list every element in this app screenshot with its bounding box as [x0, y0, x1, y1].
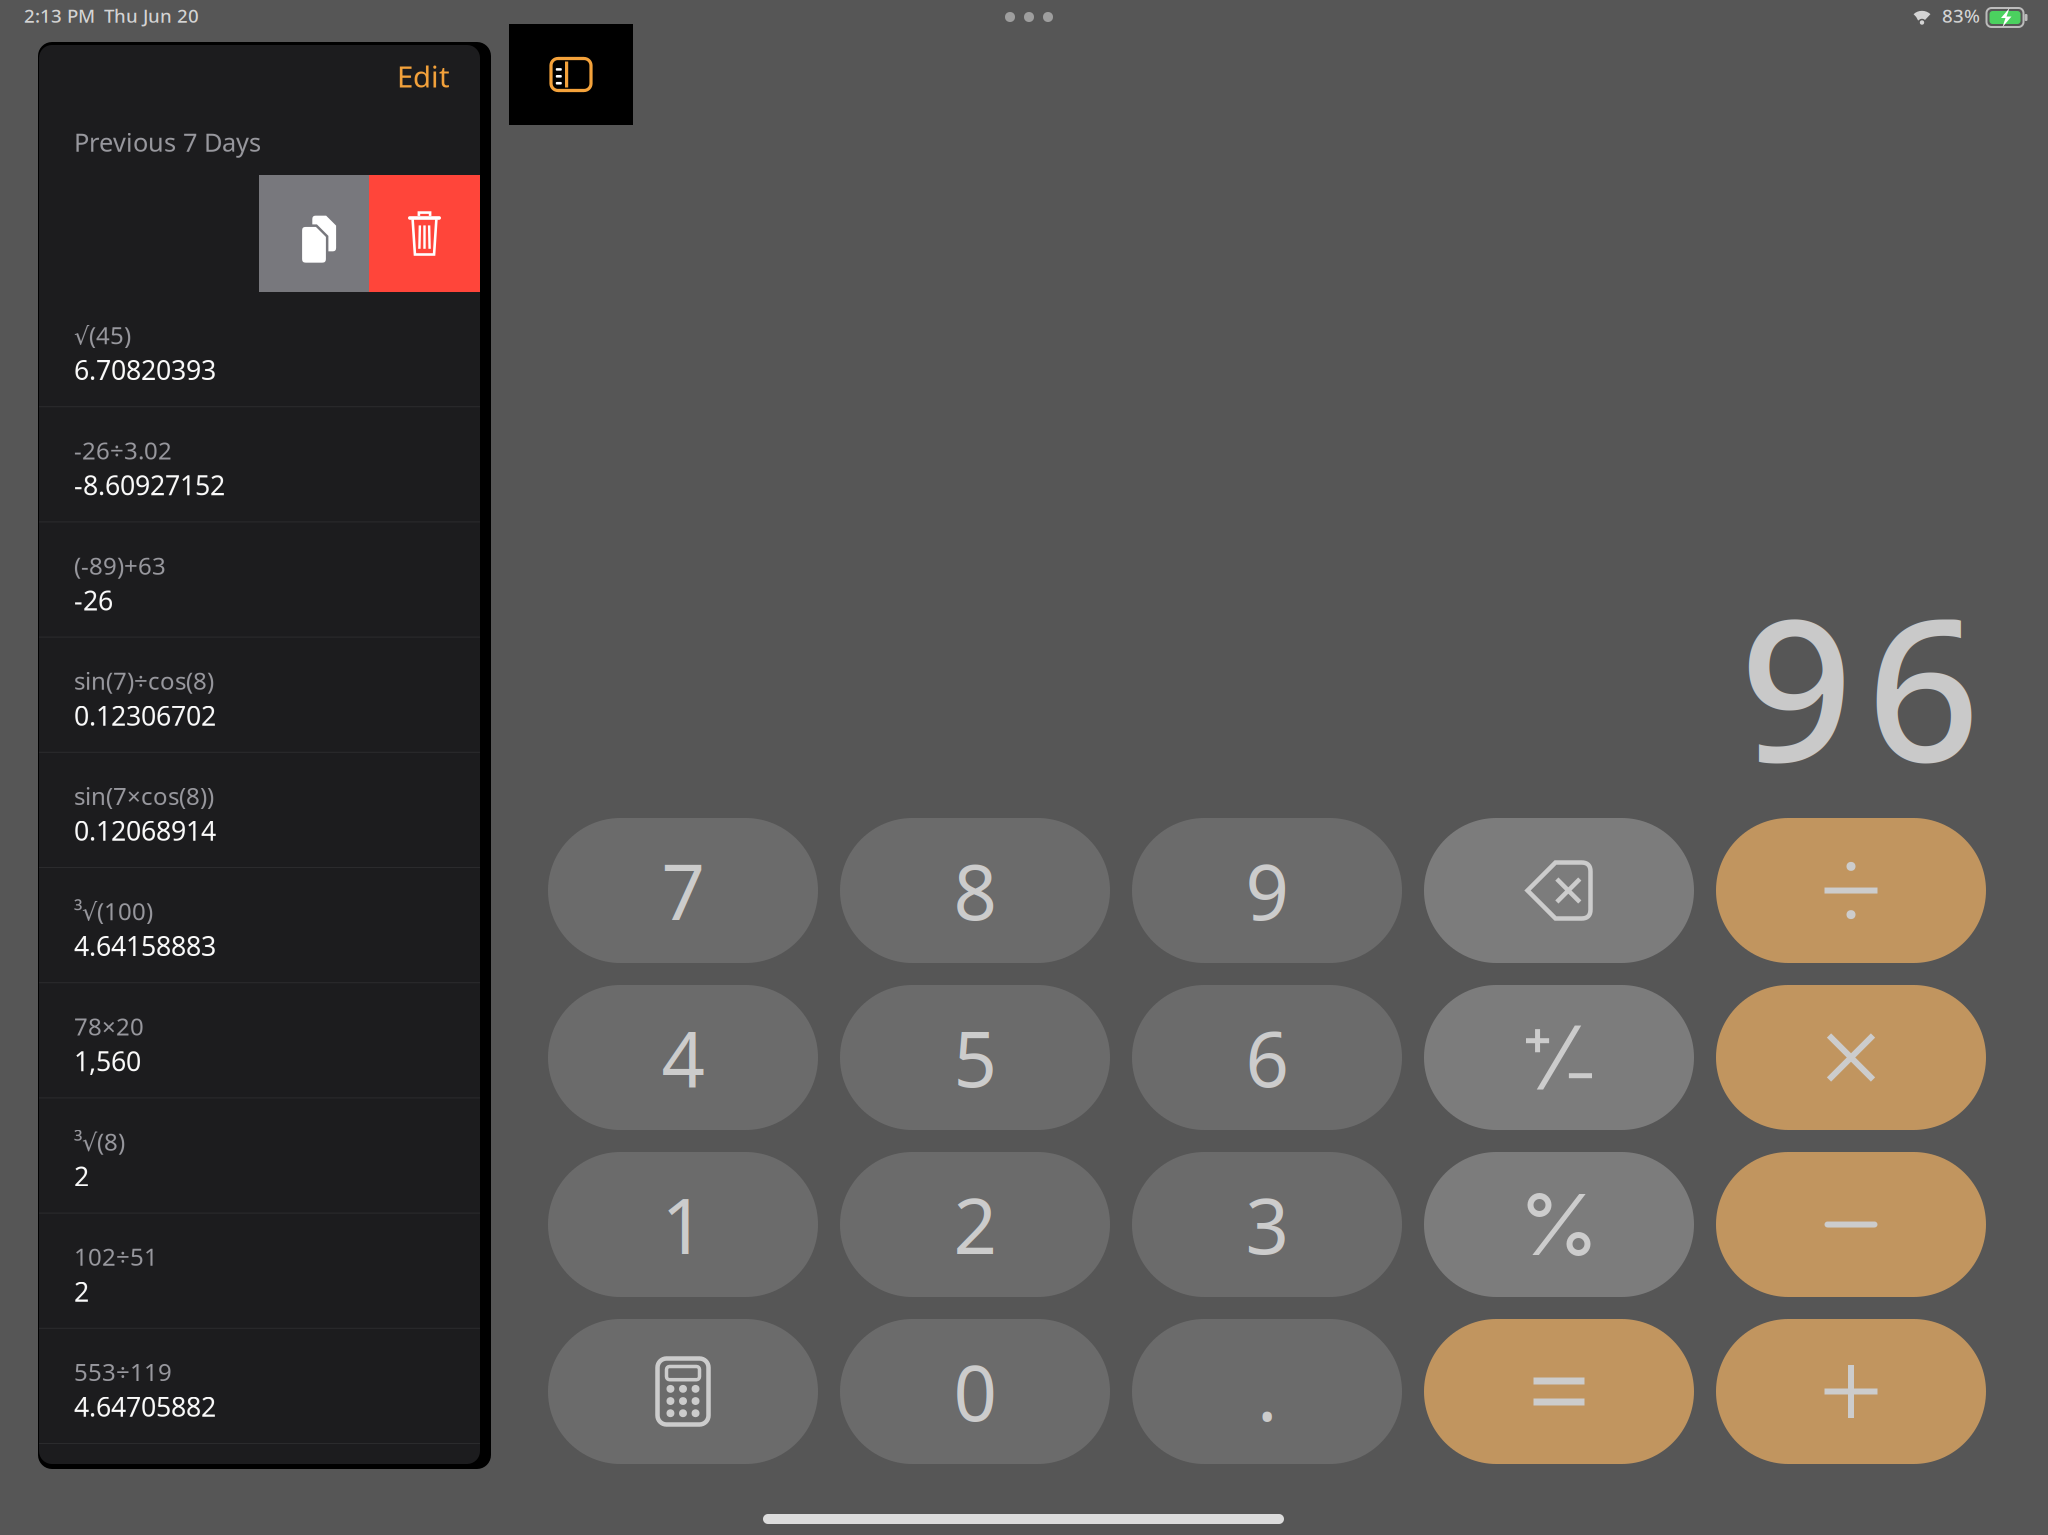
button[interactable]: Edit	[340, 48, 480, 104]
button[interactable]: 7	[548, 818, 818, 963]
staticText: -26	[74, 582, 113, 618]
button[interactable]: 78×20	[39, 983, 480, 1098]
button[interactable]: Show Sidebar	[509, 24, 633, 125]
staticText: Previous 7 Days	[74, 125, 261, 159]
button[interactable]: 1	[548, 1152, 818, 1297]
button[interactable]: Subtract	[1716, 1152, 1986, 1297]
button[interactable]: 102÷51	[39, 1214, 480, 1329]
button[interactable]: .	[1132, 1319, 1402, 1464]
staticText: 3	[1245, 1174, 1288, 1275]
staticText: 2:13 PM	[24, 3, 95, 28]
staticText: Edit	[397, 56, 450, 95]
staticText: 1,560	[74, 1043, 141, 1079]
staticText: sin(7)÷cos(8)	[74, 665, 214, 696]
staticText: ³√(100)	[74, 895, 153, 927]
button[interactable]: √(45)	[39, 292, 480, 407]
staticText: .	[1257, 1341, 1277, 1442]
staticText: 102÷51	[74, 1241, 158, 1272]
staticText: 4.64705882	[74, 1389, 216, 1424]
button[interactable]: Plus Minus	[1424, 985, 1694, 1130]
staticText: 2	[74, 1158, 89, 1194]
button[interactable]: (-89)+63	[39, 522, 480, 638]
staticText: 0.12068914	[74, 813, 216, 848]
button[interactable]: 4	[548, 985, 818, 1130]
staticText: 0.12306702	[74, 698, 216, 733]
button[interactable]: Copy	[259, 175, 369, 292]
button[interactable]: 0	[840, 1319, 1110, 1464]
button[interactable]: Calculator Mode	[548, 1319, 818, 1464]
button[interactable]: 8	[840, 818, 1110, 963]
staticText: 1	[661, 1174, 704, 1275]
staticText: 6.70820393	[74, 352, 216, 387]
staticText: 4.64158883	[74, 928, 216, 963]
staticText: √(45)	[74, 319, 131, 351]
staticText: 0	[953, 1341, 996, 1442]
button[interactable]: Divide	[1716, 818, 1986, 963]
staticText: 2	[74, 1274, 89, 1309]
button[interactable]: 6	[1132, 985, 1402, 1130]
button[interactable]: Multiply	[1716, 985, 1986, 1130]
staticText: 5	[953, 1007, 996, 1108]
button[interactable]: 553÷119	[39, 1329, 480, 1444]
button[interactable]: -26÷3.02	[39, 407, 480, 522]
button[interactable]: Percent	[1424, 1152, 1694, 1297]
staticText: (-89)+63	[74, 549, 166, 581]
button[interactable]: 9	[1132, 818, 1402, 963]
button[interactable]: Delete	[369, 175, 480, 292]
staticText: 2	[953, 1174, 996, 1275]
staticText: ³√(8)	[74, 1125, 125, 1157]
staticText: -26÷3.02	[74, 434, 172, 466]
staticText: sin(7×cos(8))	[74, 780, 214, 812]
staticText: Thu Jun 20	[104, 3, 199, 28]
staticText: 7	[661, 840, 704, 941]
staticText: 553÷119	[74, 1356, 172, 1388]
staticText: 83%	[1942, 3, 1980, 28]
staticText: 6	[1245, 1007, 1288, 1108]
staticText: 96	[1740, 554, 1980, 816]
button[interactable]: Delete	[1424, 818, 1694, 963]
button[interactable]: 2	[840, 1152, 1110, 1297]
button[interactable]: Equals	[1424, 1319, 1694, 1464]
staticText: 4	[661, 1007, 704, 1108]
button[interactable]: sin(7×cos(8))	[39, 753, 480, 868]
staticText: 8	[953, 840, 996, 941]
staticText: 9	[1245, 840, 1288, 941]
button[interactable]: sin(7)÷cos(8)	[39, 638, 480, 753]
staticText: -8.60927152	[74, 467, 225, 503]
button[interactable]: ³√(8)	[39, 1098, 480, 1214]
button[interactable]: 3	[1132, 1152, 1402, 1297]
staticText: 78×20	[74, 1010, 144, 1042]
button[interactable]: Add	[1716, 1319, 1986, 1464]
button[interactable]: ³√(100)	[39, 868, 480, 983]
button[interactable]: 5	[840, 985, 1110, 1130]
